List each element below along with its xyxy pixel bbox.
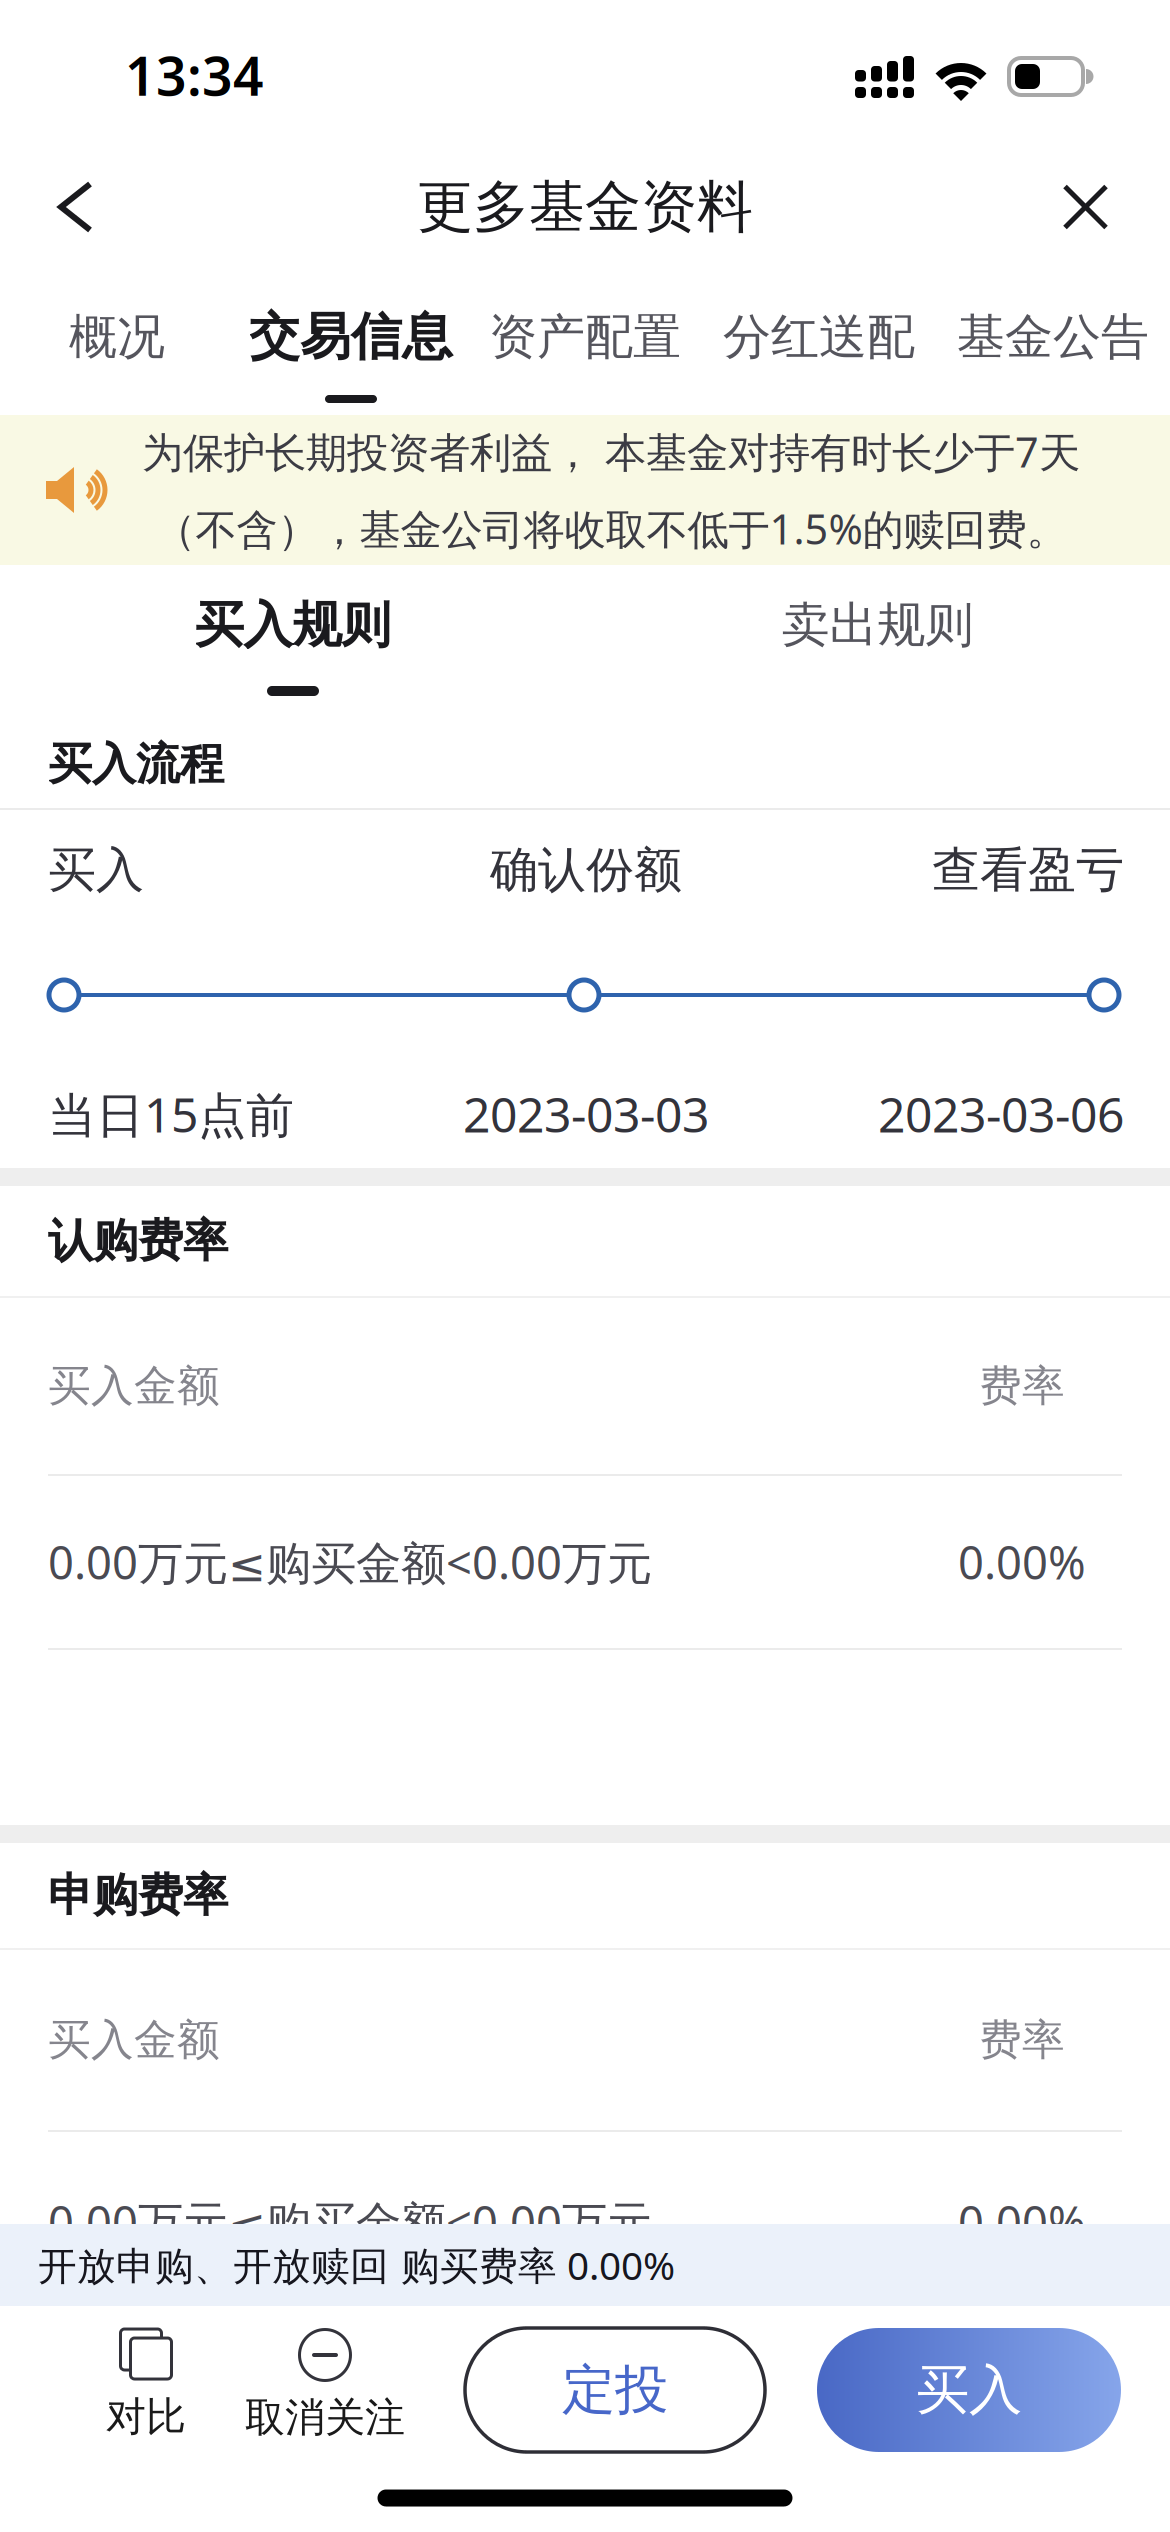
staticText: 买入金额 — [48, 1360, 220, 1412]
staticText: 为保护长期投资者利益， 本基金对持有时长少于7天 — [142, 424, 1080, 479]
staticText: 费率 — [979, 1360, 1065, 1412]
staticText: 概况 — [69, 307, 165, 366]
staticText: 对比 — [106, 2392, 186, 2441]
button[interactable]: 取消关注 — [240, 2306, 410, 2442]
staticText: 买入 — [916, 2357, 1022, 2423]
button[interactable]: 交易信息 — [234, 264, 468, 410]
staticText: 0.00% — [958, 1532, 1086, 1592]
staticText: 交易信息 — [249, 306, 453, 368]
button[interactable]: 对比 — [100, 2306, 192, 2441]
staticText: 基金公告 — [957, 307, 1149, 366]
button[interactable]: Back — [57, 181, 94, 233]
button[interactable]: 基金公告 — [936, 264, 1170, 410]
staticText: 卖出规则 — [781, 595, 973, 654]
staticText: 2023-03-03 — [463, 1082, 709, 1146]
staticText: 认购费率 — [48, 1213, 228, 1269]
staticText: 查看盈亏 — [932, 840, 1124, 899]
staticText: 确认份额 — [490, 840, 682, 899]
staticText: 买入流程 — [48, 737, 224, 791]
button[interactable]: 买入 — [817, 2306, 1121, 2452]
staticText: 定投 — [562, 2357, 668, 2423]
button[interactable]: Close — [1063, 184, 1108, 229]
staticText: 0.00% — [958, 2192, 1086, 2252]
staticText: 买入金额 — [48, 2014, 220, 2066]
button[interactable]: 定投 — [465, 2306, 765, 2452]
button[interactable]: 买入规则 — [0, 565, 585, 685]
staticText: （不含），基金公司将收取不低于1.5%的赎回费。 — [154, 501, 1067, 556]
staticText: 费率 — [979, 2014, 1065, 2066]
button[interactable]: 概况 — [0, 264, 234, 410]
staticText: 买入规则 — [194, 595, 390, 655]
button[interactable]: Play announcement — [46, 466, 108, 514]
staticText: 0.00万元≤购买金额<0.00万元 — [48, 1532, 652, 1592]
staticText: 取消关注 — [245, 2393, 405, 2442]
button[interactable]: 资产配置 — [468, 264, 702, 410]
staticText: 申购费率 — [48, 1868, 228, 1923]
staticText: 0.00万元≤购买金额<0.00万元 — [48, 2192, 652, 2252]
staticText: 买入 — [48, 840, 144, 899]
staticText: 资产配置 — [489, 307, 681, 366]
staticText: 更多基金资料 — [417, 173, 753, 241]
staticText: 当日15点前 — [48, 1082, 294, 1146]
button[interactable]: 卖出规则 — [585, 565, 1170, 685]
staticText: 开放申购、开放赎回 购买费率 0.00% — [38, 2239, 675, 2291]
staticText: 2023-03-06 — [878, 1082, 1124, 1146]
staticText: 分红送配 — [723, 307, 915, 366]
staticText: 13:34 — [125, 40, 264, 110]
button[interactable]: 分红送配 — [702, 264, 936, 410]
